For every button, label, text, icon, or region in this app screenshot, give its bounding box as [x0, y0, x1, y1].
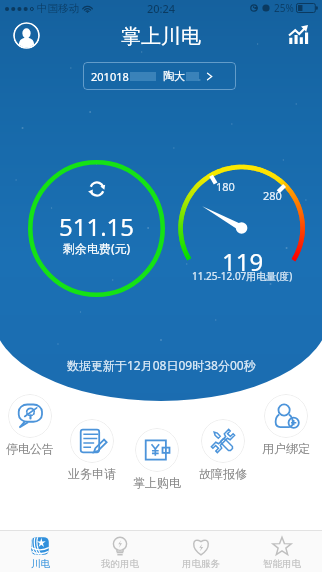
- button[interactable]: 511.15: [28, 160, 165, 297]
- button[interactable]: 用户绑定: [254, 394, 318, 456]
- staticText: 180: [216, 179, 235, 194]
- staticText: 511.15: [59, 210, 135, 243]
- staticText: 故障报修: [199, 466, 247, 481]
- staticText: 剩余电费(元): [63, 240, 131, 256]
- staticText: 11.25-12.07用电量(度): [192, 269, 293, 283]
- staticText: 280: [263, 188, 282, 203]
- button[interactable]: 故障报修: [191, 419, 255, 481]
- staticText: 数据更新于12月08日09时38分00秒: [67, 357, 256, 373]
- staticText: 用户绑定: [262, 441, 310, 456]
- staticText: 掌上川电: [121, 24, 201, 49]
- staticText: 25%: [274, 1, 294, 15]
- staticText: 我的用电: [101, 558, 139, 570]
- staticText: 119: [222, 245, 264, 278]
- staticText: 中国移动: [37, 2, 79, 15]
- button[interactable]: 业务申请: [60, 419, 124, 481]
- staticText: 川电: [31, 558, 50, 570]
- staticText: 智能用电: [263, 558, 301, 570]
- button[interactable]: 掌上购电: [125, 428, 189, 490]
- button[interactable]: Statistics: [286, 23, 311, 48]
- staticText: 201018: [91, 69, 129, 84]
- button[interactable]: 停电公告: [0, 394, 62, 456]
- staticText: 停电公告: [6, 441, 54, 456]
- button[interactable]: 用电服务: [160, 531, 241, 572]
- button[interactable]: 我的用电: [80, 531, 160, 572]
- button[interactable]: 川电: [0, 531, 80, 572]
- staticText: 20:24: [147, 1, 176, 16]
- staticText: 陶大: [163, 69, 185, 83]
- button[interactable]: 201018: [83, 62, 236, 90]
- button[interactable]: Profile: [13, 22, 40, 49]
- staticText: 用电服务: [182, 558, 220, 570]
- button[interactable]: 智能用电: [241, 531, 322, 572]
- staticText: 业务申请: [68, 466, 116, 481]
- staticText: 掌上购电: [133, 475, 181, 490]
